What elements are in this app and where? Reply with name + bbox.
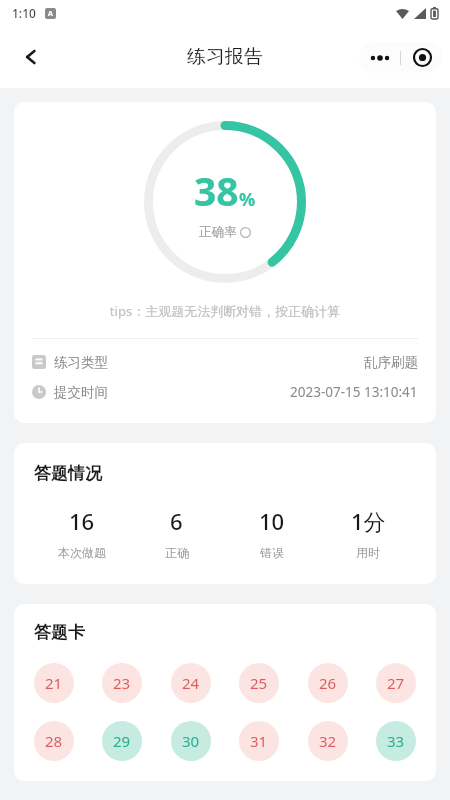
- staticText: 25: [250, 673, 268, 693]
- staticText: 1分: [351, 506, 386, 536]
- staticText: 28: [45, 731, 63, 751]
- staticText: 正确: [165, 545, 189, 560]
- staticText: 2023-07-15 13:10:41: [290, 383, 418, 401]
- staticText: 答题情况: [34, 463, 102, 484]
- staticText: A: [48, 9, 53, 19]
- button[interactable]: 30: [171, 721, 211, 761]
- staticText: 1:10: [12, 5, 36, 21]
- staticText: 30: [182, 731, 200, 751]
- button[interactable]: 24: [171, 663, 211, 703]
- staticText: 答题卡: [34, 622, 85, 643]
- staticText: 本次做题: [58, 545, 106, 560]
- button[interactable]: 33: [376, 721, 416, 761]
- button[interactable]: 28: [34, 721, 74, 761]
- button[interactable]: 26: [308, 663, 348, 703]
- staticText: 33: [387, 731, 405, 751]
- button[interactable]: 31: [239, 721, 279, 761]
- staticText: 练习类型: [54, 354, 108, 371]
- staticText: 21: [45, 673, 63, 693]
- staticText: 10: [259, 506, 285, 536]
- button[interactable]: 32: [308, 721, 348, 761]
- staticText: 31: [250, 731, 268, 751]
- staticText: 练习报告: [187, 45, 263, 69]
- staticText: 提交时间: [54, 384, 108, 401]
- button[interactable]: 29: [102, 721, 142, 761]
- staticText: 26: [319, 673, 337, 693]
- staticText: %: [239, 187, 256, 212]
- staticText: 错误: [260, 545, 284, 560]
- staticText: 24: [182, 673, 200, 693]
- staticText: 29: [113, 731, 131, 751]
- staticText: 27: [387, 673, 405, 693]
- button[interactable]: Back: [8, 33, 56, 81]
- staticText: 32: [319, 731, 337, 751]
- staticText: 23: [113, 673, 131, 693]
- staticText: 38: [194, 164, 239, 217]
- staticText: 6: [170, 506, 183, 536]
- staticText: tips：主观题无法判断对错，按正确计算: [14, 302, 436, 320]
- staticText: 正确率: [199, 224, 237, 240]
- button[interactable]: 21: [34, 663, 74, 703]
- button[interactable]: 23: [102, 663, 142, 703]
- button[interactable]: Close: [401, 42, 443, 73]
- staticText: 乱序刷题: [364, 354, 418, 371]
- button[interactable]: More options: [359, 42, 400, 73]
- staticText: 16: [69, 506, 95, 536]
- staticText: 用时: [356, 545, 380, 560]
- button[interactable]: 27: [376, 663, 416, 703]
- button[interactable]: 25: [239, 663, 279, 703]
